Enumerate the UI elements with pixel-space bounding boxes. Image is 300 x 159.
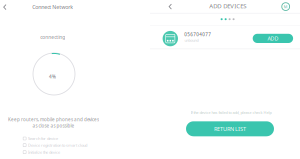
staticText: RETURN LIST [214, 125, 246, 133]
staticText: unbound [184, 38, 198, 43]
staticText: If the device has failed to add, please … [190, 110, 271, 115]
staticText: ADD [267, 35, 278, 42]
staticText: Connect Network [32, 3, 73, 10]
button[interactable]: Back [163, 0, 177, 13]
staticText: Device registration to smart cloud [28, 142, 87, 148]
staticText: Search for device [28, 136, 58, 141]
button[interactable]: RETURN LIST [186, 121, 274, 136]
staticText: 4% [49, 74, 56, 80]
staticText: M [284, 4, 288, 9]
staticText: as close as possible [33, 123, 75, 129]
staticText: ADD DEVICES [209, 2, 246, 10]
staticText: Keep routers, mobile phones and devices [8, 116, 99, 123]
staticText: connecting [40, 34, 65, 40]
staticText: Initialize the device [28, 149, 60, 155]
staticText: 056704077 [184, 31, 211, 37]
button[interactable]: Account [279, 0, 292, 13]
button[interactable]: Back [0, 1, 12, 14]
button[interactable]: 056704077 [150, 26, 300, 49]
